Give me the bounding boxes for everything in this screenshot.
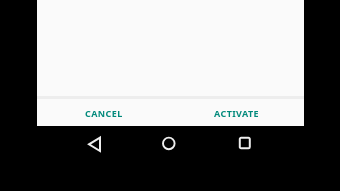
staticText: ACTIVATE — [214, 107, 260, 119]
button[interactable] — [230, 130, 260, 160]
button[interactable] — [154, 130, 184, 160]
button[interactable]: ACTIVATE — [170, 99, 304, 126]
button[interactable] — [80, 130, 110, 160]
staticText: CANCEL — [85, 107, 123, 119]
button[interactable]: CANCEL — [37, 99, 170, 126]
